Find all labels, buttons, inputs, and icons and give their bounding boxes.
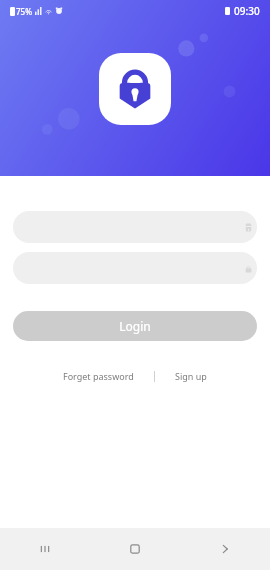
staticText: 75% [16,6,32,17]
button[interactable]: Back [180,528,270,570]
staticText: Sign up [175,370,207,382]
staticText: Forget password [63,370,134,382]
staticText: 09:30 [234,4,260,18]
button[interactable]: Forget password [57,366,140,386]
button[interactable]: Recent apps [0,528,90,570]
staticText: Login [119,318,151,334]
button[interactable]: Home [90,528,180,570]
button[interactable]: Sign up [169,366,213,386]
button[interactable]: Login [13,311,257,341]
